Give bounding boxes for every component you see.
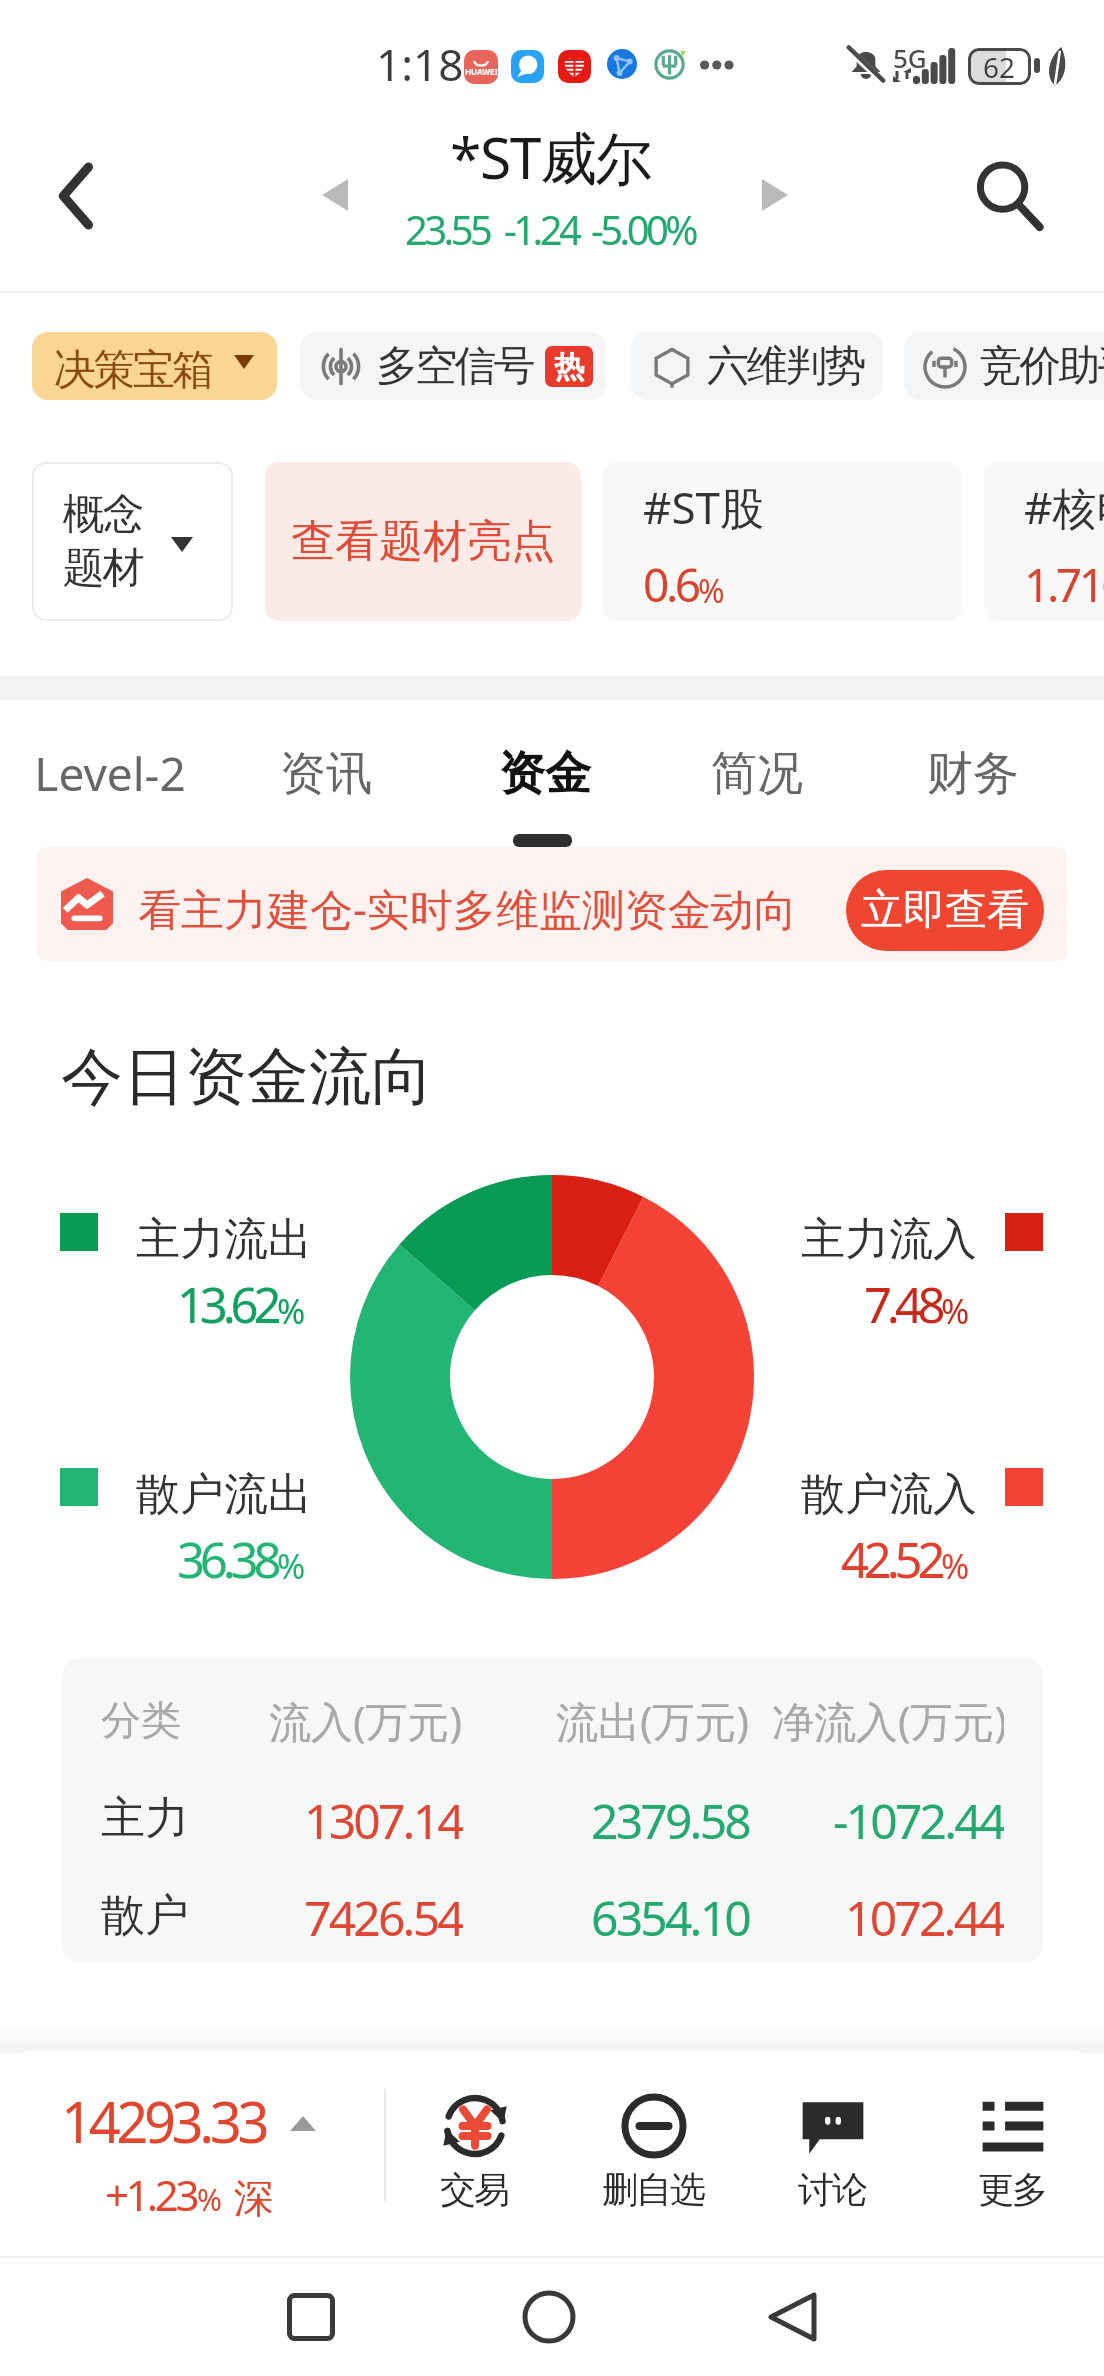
button[interactable]: 查看题材亮点 (265, 462, 581, 621)
staticText: 5G (893, 40, 927, 75)
staticText: 看主力建仓-实时多维监测资金动向 (138, 879, 797, 938)
staticText: 主力 (101, 1791, 189, 1846)
staticText: +1.23 (105, 2166, 197, 2223)
button[interactable]: Search (950, 136, 1070, 256)
staticText: 23.55 (405, 202, 490, 256)
staticText: 36.38 (177, 1526, 277, 1593)
staticText: 主力流入 (801, 1212, 977, 1267)
staticText: 热 (554, 348, 584, 386)
staticText: 1:18 (376, 34, 464, 94)
staticText: 1307.14 (304, 1788, 463, 1848)
button[interactable]: Home (489, 2257, 609, 2376)
staticText: 概念 (64, 488, 143, 541)
button[interactable]: 删自选 (564, 2051, 744, 2236)
staticText: 交易 (441, 2167, 509, 2212)
staticText: 决策宝箱 (55, 344, 213, 397)
button[interactable]: 立即查看 (846, 870, 1044, 951)
button[interactable]: #核电 (984, 462, 1104, 621)
staticText: #ST股 (643, 477, 765, 537)
staticText: 7.48 (864, 1271, 941, 1338)
button[interactable]: 六维判势 (631, 332, 883, 400)
staticText: 净流入(万元) (772, 1692, 1004, 1749)
staticText: 讨论 (799, 2167, 867, 2212)
button[interactable]: Back (733, 2257, 853, 2376)
staticText: 1072.44 (845, 1885, 1004, 1945)
staticText: 六维判势 (707, 340, 864, 393)
staticText: 题材 (64, 542, 143, 595)
staticText: #核电 (1024, 477, 1104, 537)
button[interactable]: 竞价助手 (904, 332, 1104, 400)
button[interactable]: 简况 (657, 700, 857, 847)
staticText: 散户流入 (801, 1467, 977, 1522)
staticText: 1.71 (1024, 553, 1102, 616)
staticText: % (1102, 569, 1104, 613)
staticText: 2379.58 (591, 1788, 750, 1848)
button[interactable]: 决策宝箱 (32, 332, 277, 400)
staticText: 深 (234, 2173, 274, 2223)
staticText: 62 (983, 48, 1016, 85)
staticText: 分类 (101, 1695, 181, 1745)
staticText: 立即查看 (861, 884, 1029, 937)
staticText: 14293.33 (61, 2083, 266, 2159)
button[interactable]: 交易 (385, 2051, 565, 2236)
staticText: 删自选 (603, 2167, 705, 2212)
staticText: 简况 (711, 745, 803, 803)
staticText: % (197, 2179, 222, 2220)
staticText: 多空信号 (376, 340, 533, 393)
button[interactable]: 资金 (445, 700, 645, 847)
button[interactable]: 讨论 (743, 2051, 923, 2236)
button[interactable]: 14293.33 (0, 2051, 384, 2236)
staticText: HUAWEI (465, 66, 498, 77)
staticText: % (277, 1288, 306, 1334)
staticText: 0.6 (643, 553, 698, 616)
button[interactable]: Next stock (740, 160, 810, 230)
staticText: Level-2 (34, 742, 186, 805)
staticText: 流出(万元) (556, 1692, 750, 1749)
staticText: 42.52 (841, 1526, 941, 1593)
button[interactable]: 概念 (32, 462, 233, 621)
staticText: 散户 (101, 1888, 189, 1943)
staticText: -5.00% (591, 202, 695, 256)
staticText: -1.24 (504, 202, 579, 256)
button[interactable]: Level-2 (10, 700, 210, 847)
staticText: -1072.44 (833, 1788, 1004, 1848)
staticText: 散户流出 (136, 1467, 312, 1522)
staticText: 竞价助手 (980, 340, 1104, 393)
button[interactable]: 财务 (873, 700, 1073, 847)
staticText: 流入(万元) (269, 1692, 463, 1749)
staticText: *ST威尔 (450, 118, 651, 196)
staticText: 财务 (927, 745, 1019, 803)
staticText: 7426.54 (304, 1885, 463, 1945)
staticText: 资金 (499, 745, 591, 803)
button[interactable]: Recents (251, 2257, 371, 2376)
staticText: 查看题材亮点 (291, 514, 555, 569)
staticText: % (698, 569, 725, 613)
staticText: 今日资金流向 (61, 1038, 433, 1116)
staticText: % (941, 1543, 970, 1589)
button[interactable]: 看主力建仓-实时多维监测资金动向 (37, 847, 1067, 961)
staticText: % (941, 1288, 970, 1334)
staticText: 资讯 (280, 745, 372, 803)
staticText: 更多 (979, 2167, 1047, 2212)
staticText: 主力流出 (136, 1212, 312, 1267)
staticText: % (277, 1543, 306, 1589)
button[interactable]: #ST股 (603, 462, 962, 621)
staticText: 13.62 (177, 1271, 277, 1338)
staticText: 6354.10 (591, 1885, 750, 1945)
button[interactable]: 多空信号 (300, 332, 606, 400)
button[interactable]: Back (17, 136, 137, 256)
button[interactable]: Previous stock (300, 160, 370, 230)
button[interactable]: 更多 (923, 2051, 1103, 2236)
button[interactable]: 资讯 (226, 700, 426, 847)
